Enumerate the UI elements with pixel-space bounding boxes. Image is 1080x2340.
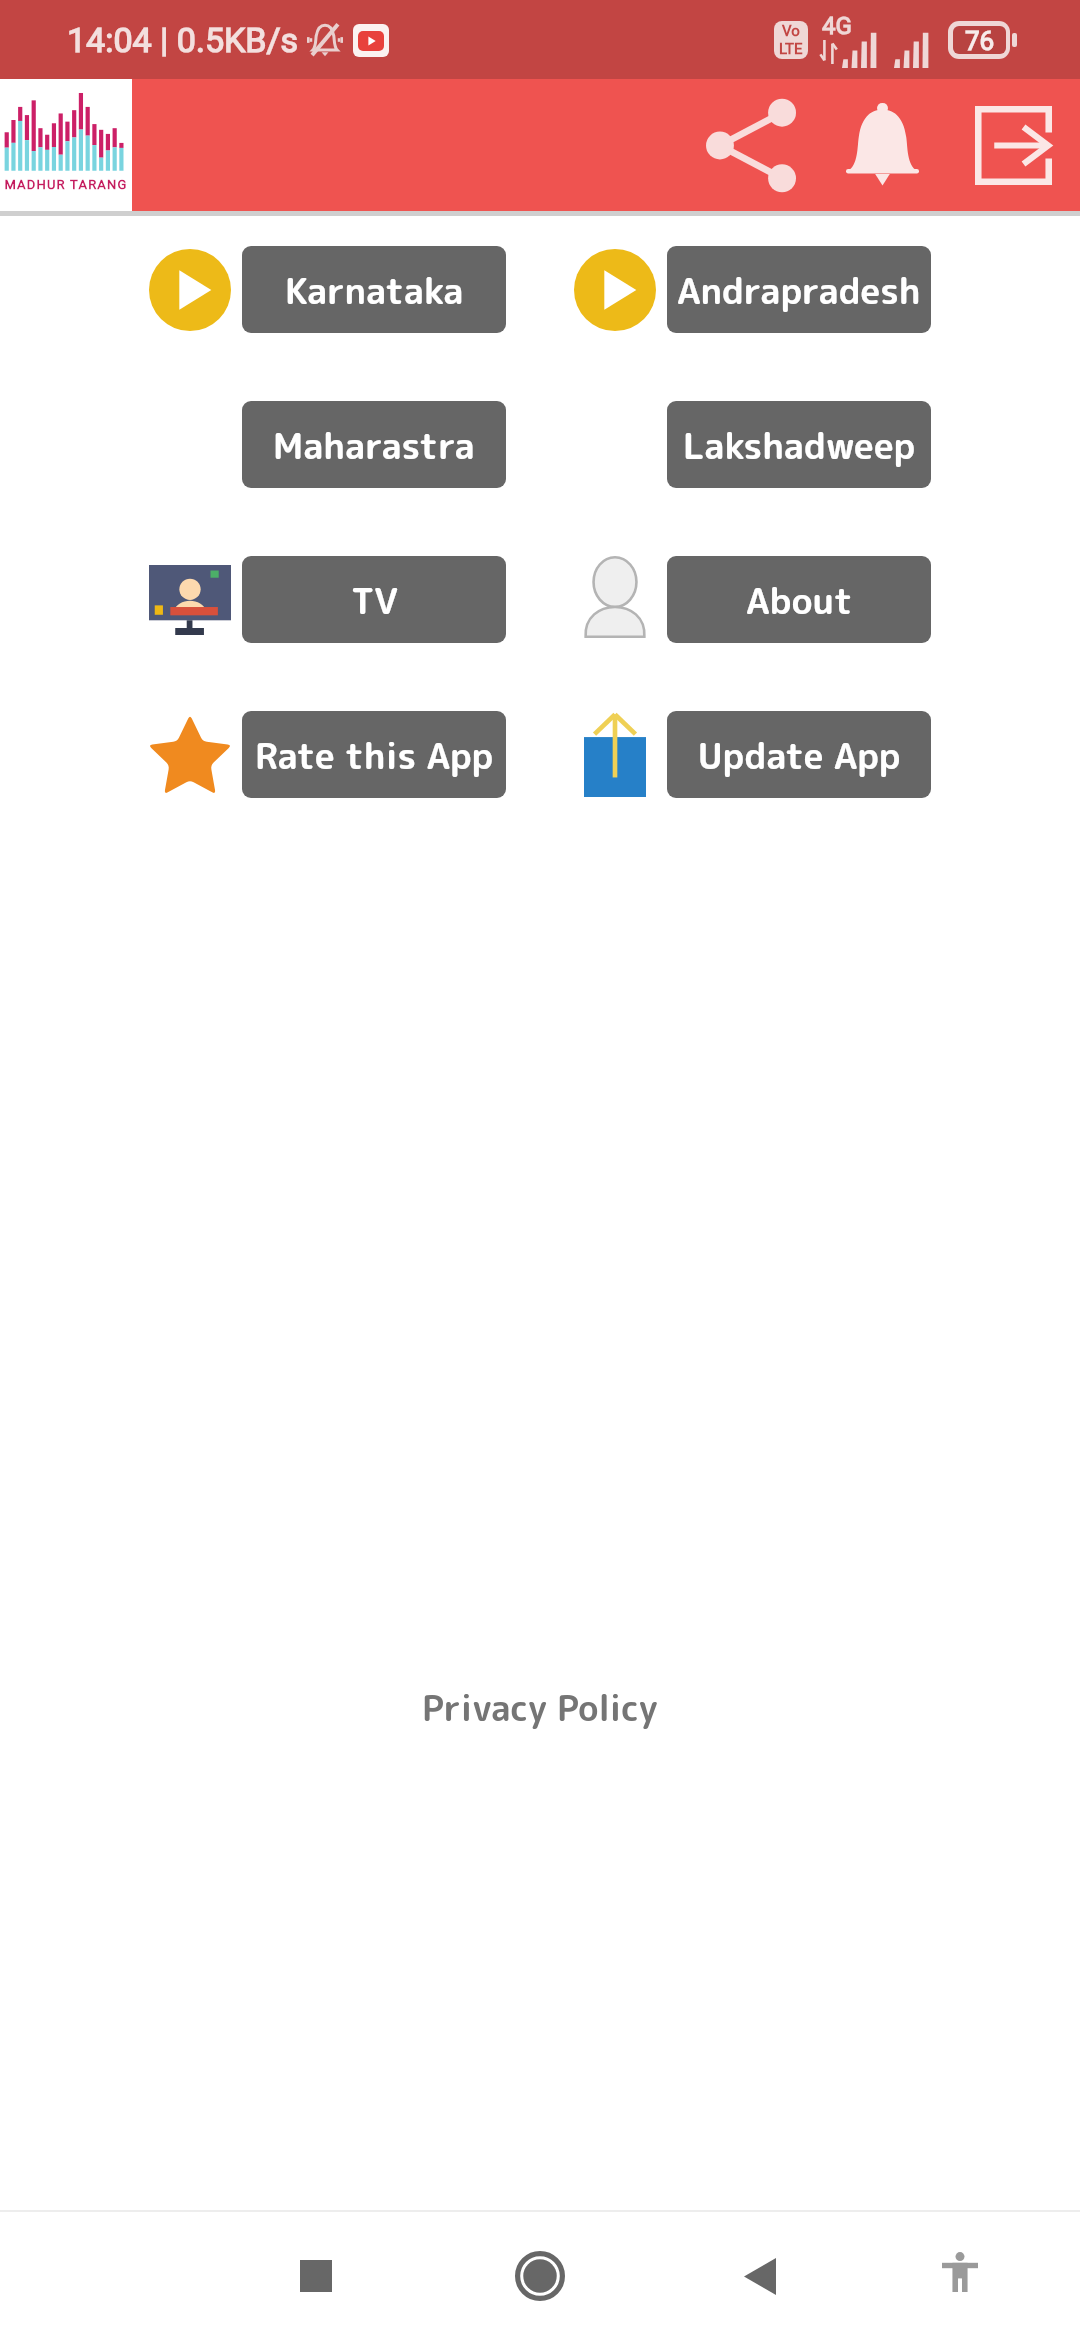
- staticText: Rate this App: [255, 730, 494, 780]
- staticText: 76: [965, 26, 995, 54]
- button[interactable]: TV: [242, 556, 506, 643]
- button[interactable]: Accessibility: [890, 2212, 1030, 2340]
- button[interactable]: Logout: [953, 79, 1073, 211]
- button[interactable]: Rate this App: [242, 711, 506, 798]
- staticText: Vo: [782, 22, 800, 40]
- staticText: Andrapradesh: [677, 265, 921, 315]
- staticText: MADHUR TARANG: [4, 177, 128, 192]
- button[interactable]: Back: [690, 2212, 830, 2340]
- button[interactable]: About: [667, 556, 931, 643]
- button[interactable]: Notifications: [822, 79, 942, 211]
- staticText: Privacy Policy: [422, 1683, 658, 1732]
- staticText: Maharastra: [273, 420, 475, 470]
- staticText: Karnataka: [285, 265, 464, 315]
- button[interactable]: Recents: [246, 2212, 386, 2340]
- staticText: Update App: [698, 730, 901, 780]
- button[interactable]: Privacy Policy: [422, 1683, 658, 1732]
- staticText: LTE: [779, 40, 803, 58]
- staticText: Lakshadweep: [683, 420, 916, 470]
- staticText: TV: [351, 575, 398, 625]
- button[interactable]: Andrapradesh: [667, 246, 931, 333]
- button[interactable]: Share: [691, 79, 811, 211]
- button[interactable]: Update App: [667, 711, 931, 798]
- staticText: About: [746, 575, 853, 625]
- button[interactable]: Lakshadweep: [667, 401, 931, 488]
- button[interactable]: Home: [470, 2212, 610, 2340]
- staticText: 14:04 | 0.5KB/s: [67, 20, 299, 60]
- button[interactable]: Karnataka: [242, 246, 506, 333]
- staticText: 4G: [822, 12, 852, 40]
- button[interactable]: Maharastra: [242, 401, 506, 488]
